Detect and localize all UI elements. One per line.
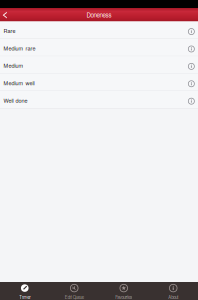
button[interactable]: Medium well	[0, 74, 198, 91]
button[interactable]: Timer	[0, 282, 49, 300]
button[interactable]: Medium	[0, 56, 198, 74]
staticText: Rare	[3, 27, 15, 35]
button[interactable]: Well done	[0, 91, 198, 108]
staticText: Favourites	[115, 294, 132, 300]
staticText: Well done	[3, 96, 27, 104]
button[interactable]: Edit Queue	[49, 282, 99, 300]
staticText: About	[168, 294, 178, 300]
staticText: Medium rare	[3, 44, 35, 52]
staticText: Medium well	[3, 79, 34, 87]
button[interactable]: Medium rare	[0, 39, 198, 56]
staticText: Timer	[19, 294, 30, 300]
button[interactable]: Favourites	[99, 282, 148, 300]
button[interactable]: Rare	[0, 21, 198, 39]
staticText: Doneness	[86, 10, 111, 19]
staticText: Medium	[3, 62, 23, 69]
button[interactable]: Back	[0, 8, 13, 21]
staticText: Edit Queue	[65, 294, 84, 300]
button[interactable]: About	[148, 282, 198, 300]
